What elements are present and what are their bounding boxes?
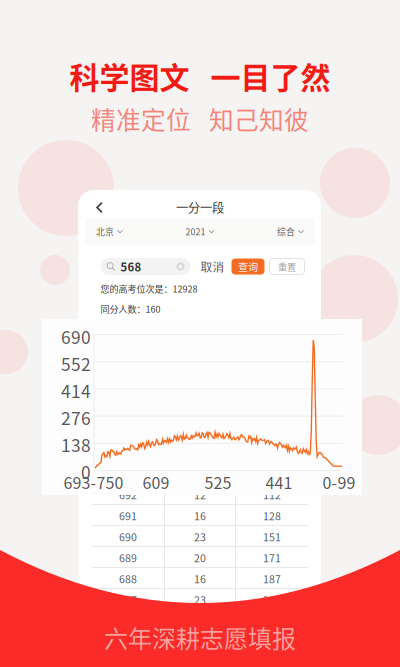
staticText: 您的高考位次是：12928 [100,282,197,295]
staticText: 609 [142,470,169,494]
staticText: 六年深耕志愿填报 [104,620,296,655]
button[interactable]: 2021 [185,225,214,238]
staticText: 0 [81,459,91,484]
staticText: 23 [194,529,206,544]
staticText: 691 [119,508,137,523]
staticText: 525 [204,470,231,494]
button[interactable]: Back [85,197,103,218]
staticText: 23 [194,592,206,607]
staticText: 16 [194,508,206,523]
staticText: 690 [119,529,137,544]
staticText: 12 [194,487,206,502]
staticText: 568 [120,258,141,275]
staticText: 精准定位 知己知彼 [91,101,309,137]
staticText: 取消 [200,258,224,275]
staticText: 151 [263,529,281,544]
staticText: 171 [263,550,281,565]
staticText: 441 [265,470,292,494]
staticText: 210 [263,592,281,607]
staticText: 690 [61,324,91,349]
staticText: 692 [119,487,137,502]
staticText: 187 [263,571,281,586]
staticText: 0-99 [322,470,355,494]
staticText: 16 [194,571,206,586]
staticText: 687 [119,592,137,607]
staticText: 414 [61,378,91,403]
staticText: 276 [61,405,91,430]
staticText: 一分一段 [176,199,224,216]
button[interactable]: 综合 [277,225,304,238]
button[interactable]: 北京 [96,225,123,238]
staticText: 同分人数：160 [100,302,160,315]
button[interactable]: 查询 [231,258,264,274]
staticText: 综合 [277,225,295,238]
staticText: 688 [119,571,137,586]
staticText: 重置 [278,260,296,273]
button[interactable]: 重置 [269,258,304,274]
staticText: 693-750 [63,470,123,494]
staticText: 689 [119,550,137,565]
staticText: 552 [61,351,91,376]
staticText: 北京 [96,225,114,238]
staticText: 科学图文 一目了然 [69,54,330,97]
staticText: 2021 [185,225,205,238]
staticText: 查询 [238,259,258,274]
staticText: 138 [61,432,91,457]
staticText: 20 [194,550,206,565]
staticText: 128 [263,508,281,523]
staticText: 112 [263,487,281,502]
